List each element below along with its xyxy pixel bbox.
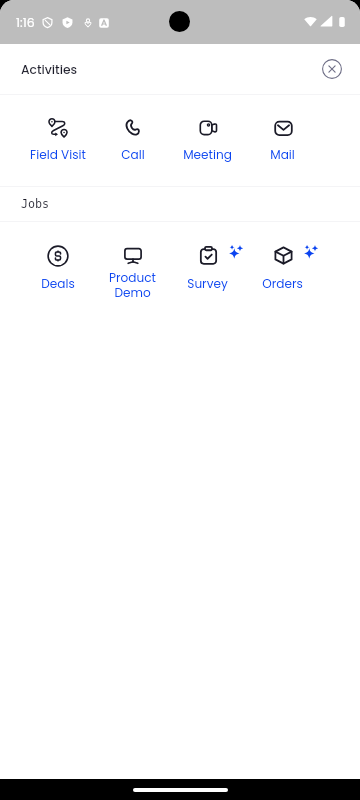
button[interactable]: Close [317,54,347,84]
staticText: Product Demo [95,269,170,301]
staticText: Orders [262,275,303,292]
staticText: Mail [270,146,295,163]
button[interactable]: Product Demo [95,222,170,312]
button[interactable]: Field Visit [20,96,95,186]
staticText: Call [121,146,145,163]
staticText: Activities [21,61,78,78]
staticText: Jobs [21,197,50,211]
button[interactable]: Survey [170,222,245,312]
staticText: Survey [187,275,228,292]
button[interactable]: Call [95,96,170,186]
button[interactable]: Deals [20,222,95,312]
staticText: Deals [41,275,75,292]
staticText: Meeting [183,146,232,163]
button[interactable]: Meeting [170,96,245,186]
button[interactable]: Orders [245,222,320,312]
staticText: Field Visit [30,146,86,163]
staticText: 1:16 [16,14,35,31]
button[interactable]: Mail [245,96,320,186]
